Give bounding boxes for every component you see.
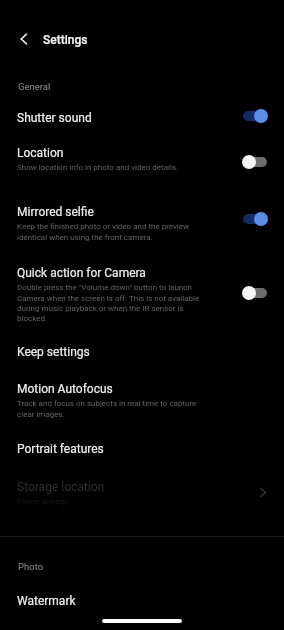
staticText: Track and focus on subjects in real time… <box>17 399 199 419</box>
button[interactable]: Mirrored selfie <box>0 194 284 248</box>
staticText: Keep settings <box>17 345 90 359</box>
staticText: General <box>18 81 51 92</box>
button[interactable]: Location, off <box>243 154 267 170</box>
staticText: Portrait features <box>17 442 104 456</box>
button[interactable]: Watermark <box>0 584 284 614</box>
button[interactable]: Quick action for Camera, off <box>243 285 267 301</box>
staticText: Keep the finished photo or video and the… <box>17 222 199 242</box>
staticText: Quick action for Camera <box>17 266 146 280</box>
button[interactable]: Shutter sound, on <box>243 108 267 124</box>
staticText: Mirrored selfie <box>17 205 94 219</box>
staticText: Shutter sound <box>17 111 92 125</box>
button[interactable]: Navigate up <box>12 27 36 51</box>
button[interactable]: Location <box>0 136 284 182</box>
staticText: Show location info in photo and video de… <box>17 163 199 172</box>
staticText: Settings <box>43 33 88 47</box>
button[interactable]: Settings <box>40 26 110 52</box>
button[interactable]: Shutter sound <box>0 100 284 134</box>
staticText: Storage location <box>17 480 105 494</box>
button[interactable]: Quick action for Camera <box>0 256 284 330</box>
staticText: Phone storage <box>17 497 199 506</box>
button[interactable]: Portrait features <box>0 432 284 464</box>
staticText: Double press the "Volume down" button to… <box>17 283 203 323</box>
button[interactable]: Mirrored selfie, on <box>243 211 267 227</box>
staticText: Location <box>17 146 64 160</box>
staticText: Photo <box>18 561 44 572</box>
button[interactable]: Keep settings <box>0 336 284 368</box>
button[interactable]: Motion Autofocus <box>0 372 284 426</box>
button[interactable]: Storage location <box>0 470 284 514</box>
staticText: Motion Autofocus <box>17 382 113 396</box>
staticText: Watermark <box>17 594 76 608</box>
